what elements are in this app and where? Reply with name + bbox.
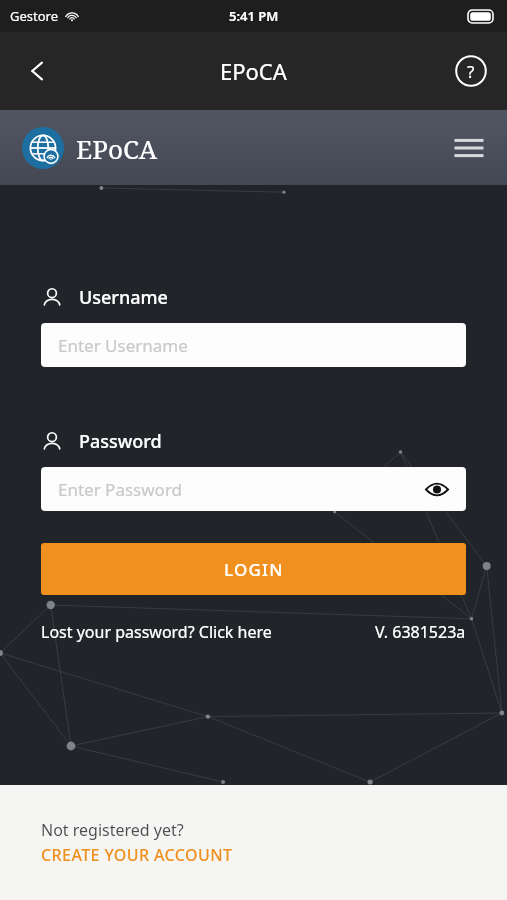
staticText: LOGIN [224, 558, 284, 581]
button[interactable]: CREATE YOUR ACCOUNT [41, 844, 233, 866]
staticText: V. 6381523a [375, 621, 466, 643]
button[interactable]: Show password [422, 474, 452, 504]
button[interactable]: Enter Password [41, 467, 466, 511]
staticText: 5:41 PM [229, 7, 279, 25]
staticText: Enter Username [58, 334, 188, 357]
staticText: EPoCA [76, 131, 158, 166]
staticText: CREATE YOUR ACCOUNT [41, 844, 233, 866]
staticText: Username [79, 285, 168, 310]
staticText: EPoCA [220, 56, 287, 86]
staticText: Gestore [10, 7, 59, 25]
button[interactable]: Enter Username [41, 323, 466, 367]
staticText: Not registered yet? [41, 819, 184, 841]
button[interactable]: Lost your password? Click here [41, 621, 361, 643]
staticText: Password [79, 429, 162, 454]
button[interactable]: Help [447, 47, 495, 95]
staticText: Lost your password? Click here [41, 621, 272, 643]
button[interactable]: Back [14, 47, 62, 95]
staticText: Enter Password [58, 478, 183, 501]
staticText: ? [467, 60, 475, 83]
button[interactable]: LOGIN [41, 543, 466, 595]
button[interactable]: Menu [445, 124, 493, 172]
